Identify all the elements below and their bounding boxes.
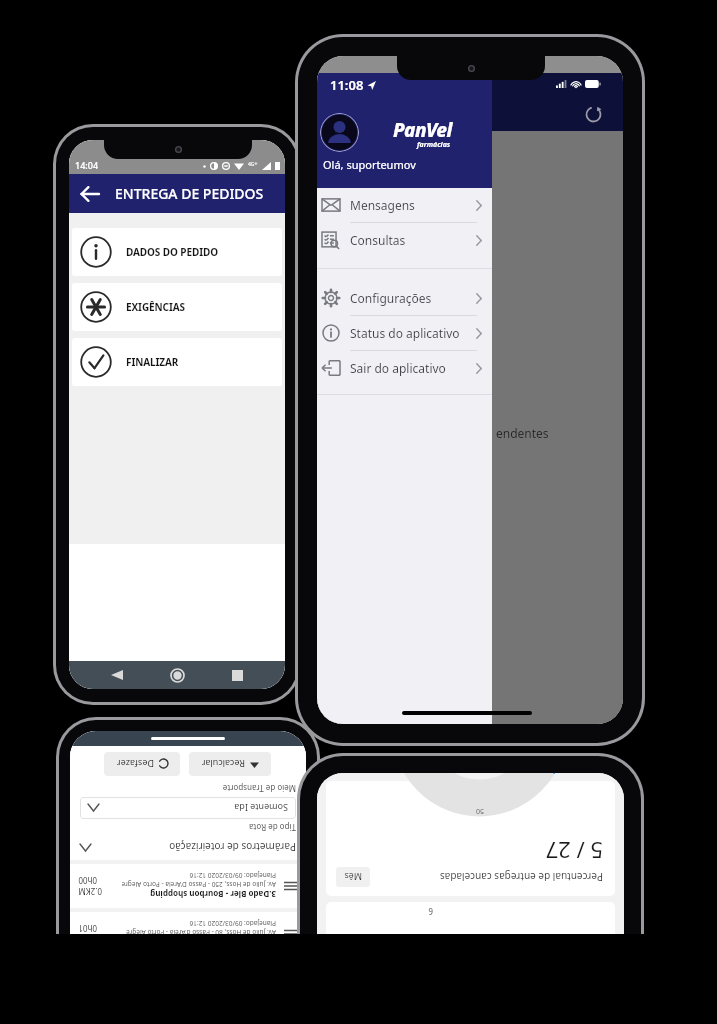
button[interactable]: Home	[165, 663, 189, 687]
staticText: Status do aplicativo	[350, 325, 476, 341]
staticText: Mês	[344, 871, 362, 883]
button[interactable]: Mês	[336, 867, 370, 887]
button[interactable]: Status do aplicativo	[317, 316, 492, 350]
staticText: Configurações	[350, 290, 476, 306]
button[interactable]: DADOS DO PEDIDO	[72, 228, 282, 276]
staticText: 0.2KM	[78, 886, 102, 897]
staticText: Olá, suporteumov	[323, 157, 416, 172]
staticText: Sair do aplicativo	[350, 360, 476, 376]
button[interactable]: Profile	[320, 113, 359, 152]
button[interactable]: EXIGÊNCIAS	[72, 283, 282, 331]
staticText: 4G+	[248, 161, 258, 168]
button[interactable]: Back	[105, 663, 129, 687]
staticText: endentes	[496, 425, 549, 441]
button[interactable]: Sair do aplicativo	[317, 351, 492, 385]
button[interactable]: Parâmetros de roteirização	[80, 835, 296, 860]
staticText: 3.Dado Bler - Bourbon shopping	[150, 889, 276, 900]
button[interactable]: Somente Ida	[80, 797, 296, 819]
staticText: PanVel	[393, 117, 452, 143]
staticText: Planejado: 09/03/2020 12:16	[189, 919, 276, 928]
staticText: Meio de Transporte	[222, 783, 296, 794]
staticText: 6	[428, 906, 433, 917]
staticText: 14:04	[75, 159, 99, 171]
staticText: Desfazer	[116, 758, 154, 770]
button[interactable]: Consultas	[317, 223, 492, 257]
staticText: 0h00	[78, 875, 97, 886]
staticText: 5 / 27	[545, 836, 603, 866]
staticText: 0h01	[78, 923, 97, 934]
button[interactable]: Desfazer	[104, 752, 180, 776]
button[interactable]: 3.Dado Bler - Bourbon shopping	[70, 864, 306, 908]
staticText: Consultas	[350, 232, 476, 248]
button[interactable]: Recalcular	[189, 752, 271, 776]
button[interactable]: 2.Dado B - Bla bla	[70, 912, 306, 956]
staticText: 11:08	[330, 76, 364, 94]
staticText: DADOS DO PEDIDO	[126, 245, 218, 259]
staticText: 50	[475, 806, 484, 816]
staticText: FINALIZAR	[126, 355, 179, 369]
button[interactable]: Configurações	[317, 281, 492, 315]
button[interactable]: FINALIZAR	[72, 338, 282, 386]
staticText: farmácias	[417, 140, 451, 150]
staticText: Planejado: 09/03/2020 12:16	[189, 871, 276, 880]
staticText: Tipo de Rota	[248, 822, 296, 833]
button[interactable]: Back	[77, 181, 103, 207]
staticText: EXIGÊNCIAS	[126, 300, 185, 314]
staticText: Somente Ida	[99, 802, 288, 814]
staticText: ENTREGA DE PEDIDOS	[115, 184, 264, 203]
staticText: Parâmetros de roteirização	[91, 840, 296, 854]
button[interactable]: Mensagens	[317, 188, 492, 222]
button[interactable]: Refresh	[582, 103, 604, 125]
staticText: Mensagens	[350, 197, 476, 213]
staticText: Recalcular	[201, 758, 245, 770]
button[interactable]: Recents	[225, 663, 249, 687]
staticText: Av. Julio de Hoss, 250 - Passo D'Areia -…	[121, 880, 276, 889]
staticText: Percentual de entregas canceladas	[370, 870, 603, 884]
staticText: Av. Julio de Hoss, 80 - Passo d'Areia - …	[126, 928, 276, 937]
